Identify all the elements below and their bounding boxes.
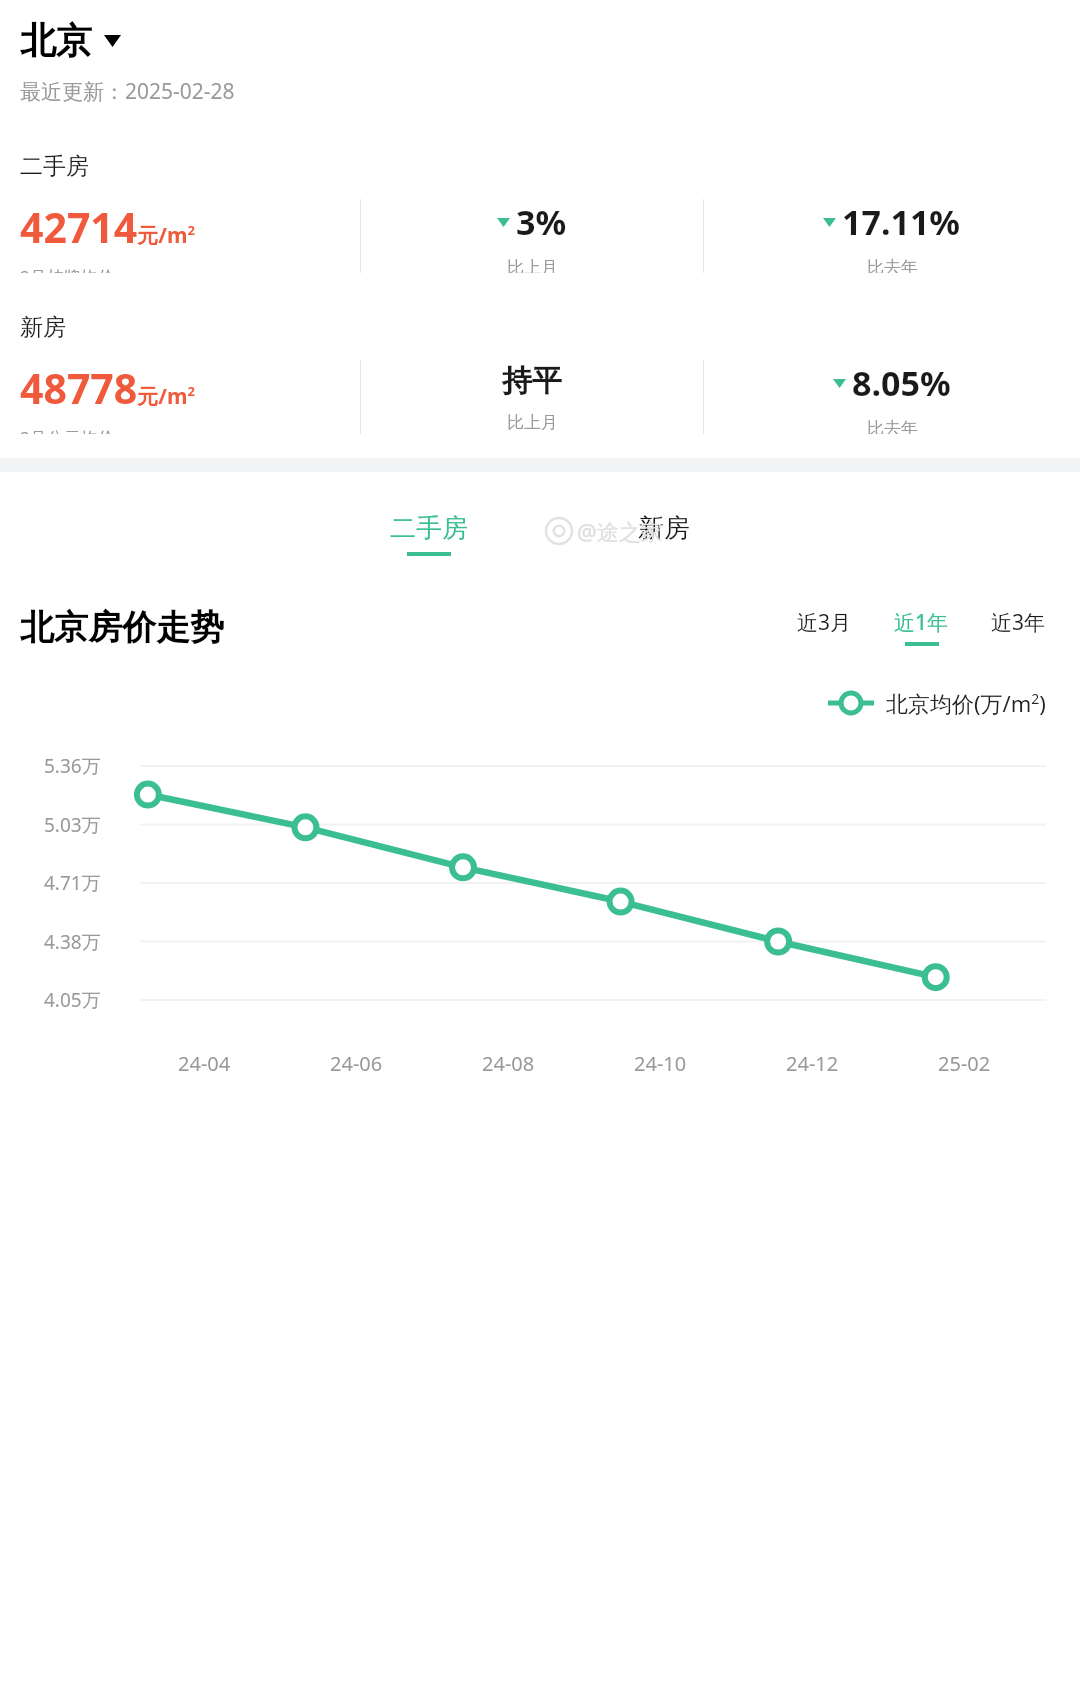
staticText: 北京均价(万/m2) xyxy=(886,688,1046,718)
staticText: 42714元/m2 xyxy=(20,199,195,255)
staticText: 4.05万 xyxy=(44,987,101,1013)
staticText: 持平 xyxy=(502,362,562,400)
staticText: 24-10 xyxy=(634,1050,687,1077)
staticText: 17.11% xyxy=(842,199,961,245)
staticText: 新房 xyxy=(638,512,690,545)
staticText: 比去年 xyxy=(867,257,918,273)
staticText: 比去年 xyxy=(867,418,918,434)
staticText: 二手房 xyxy=(20,152,89,181)
staticText: 25-02 xyxy=(938,1050,991,1077)
staticText: 3% xyxy=(516,199,567,245)
staticText: 北京 xyxy=(20,18,92,63)
button[interactable]: 近3月 xyxy=(787,604,862,650)
button[interactable]: 近1年 xyxy=(884,604,959,650)
button[interactable]: 新房 xyxy=(628,508,700,560)
staticText: 北京房价走势 xyxy=(20,606,224,649)
staticText: @途之家 xyxy=(577,516,663,546)
staticText: 2月挂牌均价 xyxy=(20,265,115,273)
staticText: 4.71万 xyxy=(44,870,101,896)
staticText: 24-06 xyxy=(330,1050,383,1077)
staticText: 最近更新：2025-02-28 xyxy=(20,77,235,106)
staticText: 8.05% xyxy=(852,360,951,406)
staticText: 4.38万 xyxy=(44,929,101,955)
staticText: 二手房 xyxy=(390,512,468,545)
staticText: 比上月 xyxy=(507,412,558,433)
staticText: 24-04 xyxy=(178,1050,231,1077)
staticText: 24-12 xyxy=(786,1050,839,1077)
staticText: 24-08 xyxy=(482,1050,535,1077)
staticText: 近3月 xyxy=(797,608,852,637)
staticText: 5.36万 xyxy=(44,753,101,779)
staticText: 48778元/m2 xyxy=(20,360,195,416)
staticText: 5.03万 xyxy=(44,812,101,838)
button[interactable]: 北京 xyxy=(20,18,121,63)
staticText: 新房 xyxy=(20,313,66,342)
button[interactable]: 近3年 xyxy=(981,604,1056,650)
button[interactable]: 二手房 xyxy=(380,508,478,560)
staticText: 比上月 xyxy=(507,257,558,273)
staticText: 近3年 xyxy=(991,608,1046,637)
other: Change city xyxy=(104,35,121,47)
staticText: 2月公示均价 xyxy=(20,426,115,434)
staticText: 近1年 xyxy=(894,608,949,637)
